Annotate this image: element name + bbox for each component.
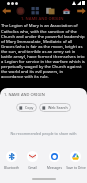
staticText: No recommended people to share with	[0, 131, 87, 136]
button[interactable]: Gmail	[22, 151, 43, 170]
button[interactable]: Documents	[44, 6, 56, 15]
staticText: Save to Drive	[66, 166, 86, 170]
staticText: 1. NAME AND ORIGIN	[4, 92, 45, 97]
staticText: Messages	[47, 166, 62, 170]
staticText: Gmail	[28, 166, 37, 170]
button[interactable]: Logo	[14, 6, 26, 15]
button[interactable]: Back	[0, 6, 12, 15]
button[interactable]: Save to Drive	[65, 151, 86, 170]
button[interactable]: Tabs	[29, 6, 41, 15]
button[interactable]: Web Search	[39, 103, 71, 112]
button[interactable]: Home	[60, 6, 72, 15]
button[interactable]: Forward	[75, 6, 87, 15]
button[interactable]: Bluetooth	[1, 151, 22, 170]
staticText: The Legion of Mary is an Association of …	[1, 23, 86, 79]
staticText: Bluetooth	[4, 166, 19, 170]
staticText: Copy	[25, 105, 34, 110]
button[interactable]: Messages	[44, 151, 65, 170]
staticText: Web Search	[48, 105, 68, 110]
staticText: 1. NAME AND ORIGIN	[21, 16, 64, 21]
button[interactable]: Copy	[16, 103, 37, 112]
